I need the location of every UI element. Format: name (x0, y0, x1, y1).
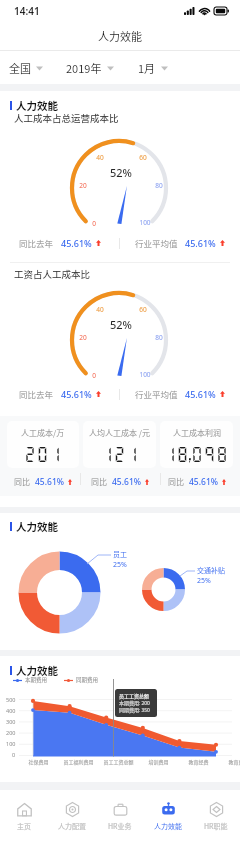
staticText: 25% (113, 560, 127, 570)
staticText: 121 (101, 444, 139, 463)
staticText: 100 (6, 740, 16, 747)
staticText: HR业务 (108, 821, 132, 831)
staticText: 同比 (14, 476, 30, 488)
staticText: 同比去年 (19, 237, 54, 249)
staticText: 20 (74, 181, 92, 190)
staticText: 40 (91, 305, 109, 314)
staticText: 45.61% (112, 476, 142, 488)
staticText: 45.61% (61, 237, 92, 249)
button[interactable]: 2019年 (66, 55, 114, 81)
staticText: 0 (12, 751, 16, 758)
button[interactable]: HR职能 (192, 790, 240, 842)
button[interactable]: 主页 (0, 790, 48, 842)
staticText: 100 (136, 218, 154, 227)
staticText: 人力配置 (58, 821, 86, 831)
staticText: 人力效能 (98, 28, 142, 44)
staticText: 主页 (17, 821, 31, 831)
staticText: 14:41 (14, 4, 40, 18)
staticText: 人力效能 (16, 663, 58, 678)
staticText: 201 (24, 444, 62, 463)
staticText: 18,098 (164, 444, 229, 463)
staticText: 员工工资总额 (103, 758, 134, 765)
staticText: 同比去年 (19, 388, 54, 400)
staticText: 45.61% (185, 237, 216, 249)
staticText: 同比 (168, 476, 184, 488)
staticText: 20 (74, 333, 92, 342)
staticText: 人工成本利润 (173, 427, 221, 439)
staticText: 45.61% (61, 388, 92, 400)
staticText: 人均人工成本 /元 (89, 427, 150, 439)
button[interactable]: 1月 (138, 55, 168, 81)
staticText: 80 (150, 333, 168, 342)
staticText: 员工福利费用 (63, 758, 94, 765)
staticText: HR职能 (204, 821, 228, 831)
staticText: 0 (85, 371, 103, 380)
staticText: 全国 (9, 60, 31, 76)
staticText: 200 (6, 729, 16, 736)
staticText: 45.61% (185, 388, 216, 400)
staticText: 工资占人工成本比 (14, 267, 91, 281)
staticText: 45.61% (35, 476, 65, 488)
staticText: 同期费用 (76, 676, 99, 684)
button[interactable]: HR业务 (96, 790, 144, 842)
staticText: 人力效能 (16, 519, 58, 534)
staticText: 300 (6, 718, 16, 725)
staticText: 行业平均值 (135, 237, 178, 249)
staticText: 教育经费 (188, 758, 209, 765)
staticText: 社保费用 (28, 758, 49, 765)
staticText: 行业平均值 (135, 388, 178, 400)
staticText: 500 (6, 696, 16, 703)
staticText: 人工成本占总运营成本比 (14, 111, 119, 125)
staticText: 员工 (113, 549, 127, 559)
staticText: 人力效能 (16, 98, 58, 113)
staticText: 25% (197, 576, 211, 586)
staticText: 教育费用 (228, 758, 240, 765)
staticText: 60 (134, 305, 152, 314)
staticText: 80 (150, 181, 168, 190)
staticText: 40 (91, 153, 109, 162)
staticText: 52% (101, 317, 141, 332)
staticText: 人力效能 (154, 821, 182, 831)
button[interactable]: 人力效能 (144, 790, 192, 842)
staticText: 2019年 (66, 60, 102, 76)
staticText: 1月 (138, 60, 156, 76)
staticText: 400 (6, 707, 16, 714)
staticText: 同比 (91, 476, 107, 488)
staticText: 52% (101, 165, 141, 180)
staticText: 45.61% (189, 476, 219, 488)
staticText: 60 (134, 153, 152, 162)
staticText: 本期费用 (25, 676, 48, 684)
staticText: 培训费用 (148, 758, 169, 765)
staticText: 员工工资总额 (119, 692, 150, 699)
staticText: 交通补贴 (197, 565, 225, 575)
staticText: 100 (136, 370, 154, 379)
staticText: 同期费用: 350 (119, 706, 150, 713)
staticText: 0 (85, 219, 103, 228)
button[interactable]: 全国 (9, 55, 43, 81)
button[interactable]: 人力配置 (48, 790, 96, 842)
staticText: 人工成本/万 (21, 427, 65, 439)
staticText: 本期费用: 200 (119, 699, 150, 706)
